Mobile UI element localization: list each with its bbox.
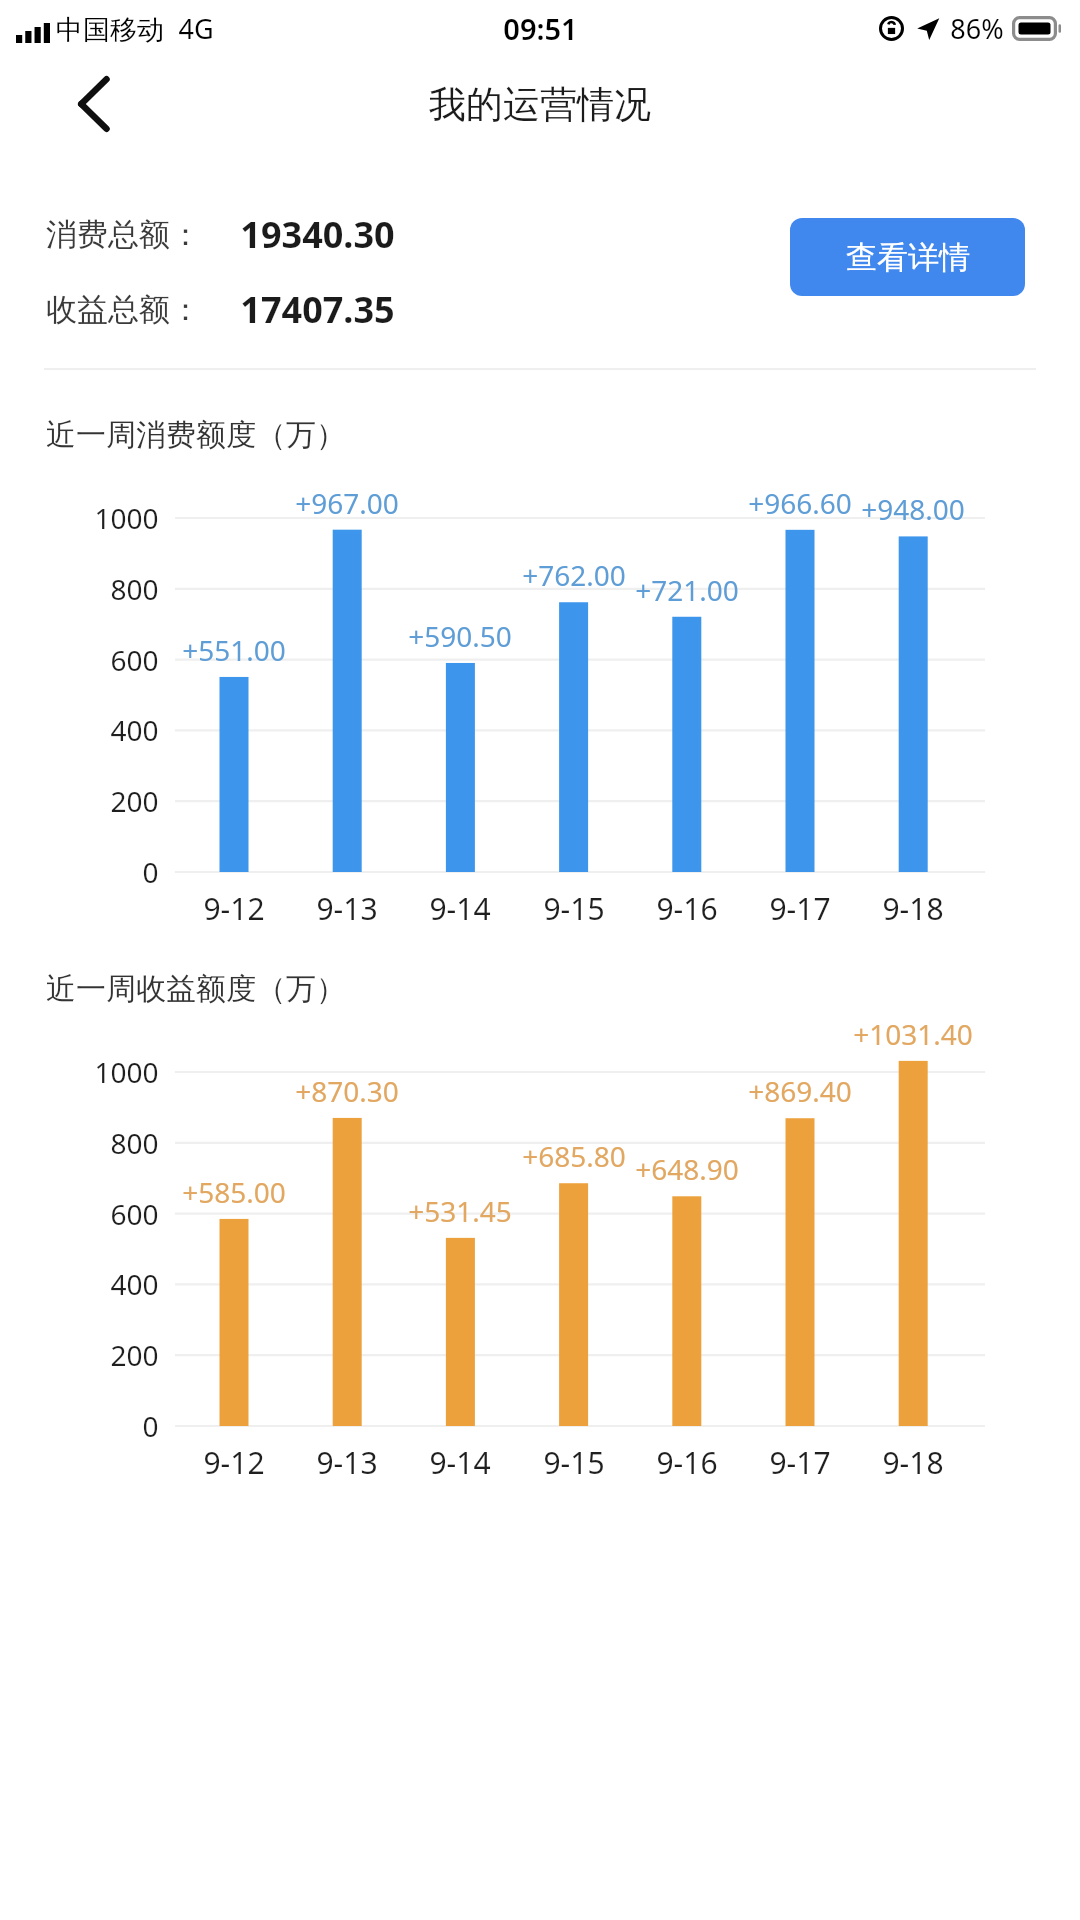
staticText: 近一周消费额度（万） — [46, 416, 346, 454]
staticText: 9-12 — [203, 888, 265, 929]
staticText: 9-14 — [429, 1442, 491, 1483]
staticText: 9-18 — [882, 1442, 944, 1483]
staticText: +869.40 — [748, 1072, 852, 1110]
staticText: 0 — [142, 1407, 159, 1445]
staticText: 400 — [110, 1265, 159, 1303]
staticText: 9-16 — [656, 1442, 718, 1483]
staticText: 查看详情 — [846, 238, 970, 277]
staticText: 800 — [110, 570, 159, 608]
staticText: 17407.35 — [240, 285, 395, 334]
staticText: +590.50 — [408, 617, 512, 655]
staticText: 9-14 — [429, 888, 491, 929]
staticText: 0 — [142, 853, 159, 891]
staticText: 800 — [110, 1124, 159, 1162]
staticText: 中国移动 — [56, 13, 164, 47]
staticText: 9-13 — [316, 888, 378, 929]
staticText: 9-13 — [316, 1442, 378, 1483]
staticText: 200 — [110, 1336, 159, 1374]
staticText: 200 — [110, 782, 159, 820]
staticText: 消费总额： — [46, 215, 201, 254]
staticText: +648.90 — [635, 1150, 739, 1188]
staticText: 9-15 — [543, 1442, 605, 1483]
staticText: +870.30 — [295, 1072, 399, 1110]
staticText: +685.80 — [522, 1137, 626, 1175]
staticText: 9-15 — [543, 888, 605, 929]
staticText: +1031.40 — [853, 1015, 973, 1053]
staticText: 9-17 — [769, 1442, 831, 1483]
staticText: +551.00 — [182, 631, 286, 669]
staticText: 400 — [110, 711, 159, 749]
staticText: +967.00 — [295, 484, 399, 522]
staticText: 600 — [110, 641, 159, 679]
staticText: 近一周收益额度（万） — [46, 970, 346, 1008]
staticText: +721.00 — [635, 571, 739, 609]
staticText: 9-18 — [882, 888, 944, 929]
staticText: 收益总额： — [46, 290, 201, 329]
staticText: +531.45 — [408, 1192, 512, 1230]
staticText: +966.60 — [748, 484, 852, 522]
staticText: 86% — [950, 10, 1004, 47]
staticText: 9-16 — [656, 888, 718, 929]
staticText: +762.00 — [522, 556, 626, 594]
button[interactable]: 查看详情 — [790, 218, 1025, 296]
staticText: +948.00 — [861, 490, 965, 528]
staticText: 我的运营情况 — [429, 81, 651, 128]
button[interactable]: Back — [56, 67, 130, 141]
staticText: 600 — [110, 1195, 159, 1233]
staticText: 1000 — [94, 1053, 159, 1091]
staticText: 19340.30 — [240, 210, 395, 259]
staticText: 4G — [178, 10, 214, 47]
staticText: +585.00 — [182, 1173, 286, 1211]
staticText: 1000 — [94, 499, 159, 537]
staticText: 9-17 — [769, 888, 831, 929]
staticText: 9-12 — [203, 1442, 265, 1483]
staticText: 09:51 — [503, 9, 578, 48]
